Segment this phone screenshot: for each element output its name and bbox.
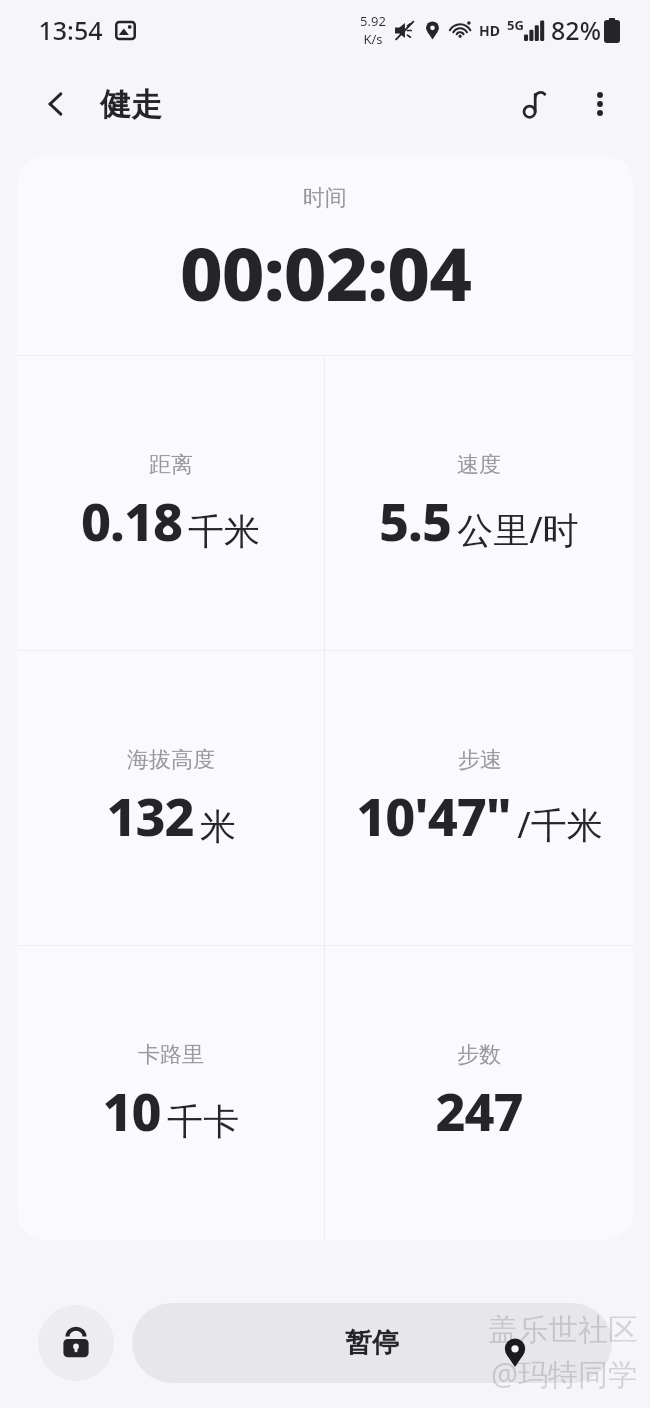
staticText: /千米 bbox=[517, 800, 603, 849]
staticText: 0.18 bbox=[81, 485, 182, 556]
button[interactable]: 速度 bbox=[325, 356, 633, 650]
button[interactable]: More options bbox=[572, 76, 628, 132]
button[interactable]: 暂停 bbox=[132, 1303, 612, 1383]
staticText: 卡路里 bbox=[138, 1041, 204, 1069]
staticText: 盖乐世社区 bbox=[488, 1311, 638, 1349]
staticText: 10 bbox=[102, 1075, 161, 1146]
button[interactable]: Music bbox=[508, 76, 564, 132]
staticText: 速度 bbox=[457, 451, 501, 479]
button[interactable]: 步速 bbox=[325, 651, 633, 945]
button[interactable]: 卡路里 bbox=[17, 946, 324, 1240]
staticText: 健走 bbox=[100, 85, 162, 124]
staticText: 5.5 bbox=[379, 485, 451, 556]
staticText: 10'47" bbox=[356, 780, 511, 851]
staticText: 时间 bbox=[303, 184, 347, 212]
staticText: 千米 bbox=[188, 509, 260, 554]
staticText: 247 bbox=[435, 1075, 523, 1146]
button[interactable]: 海拔高度 bbox=[17, 651, 324, 945]
staticText: 82% bbox=[551, 13, 601, 47]
staticText: 5G bbox=[507, 16, 524, 34]
staticText: 公里/时 bbox=[457, 505, 579, 554]
staticText: 暂停 bbox=[345, 1326, 399, 1360]
staticText: 00:02:04 bbox=[180, 222, 471, 323]
button[interactable]: Back bbox=[30, 78, 82, 130]
staticText: HD bbox=[479, 21, 500, 40]
staticText: 步数 bbox=[457, 1041, 501, 1069]
staticText: 海拔高度 bbox=[127, 746, 215, 774]
button[interactable]: 步数 bbox=[325, 946, 633, 1240]
button[interactable]: Lock bbox=[38, 1305, 114, 1381]
staticText: 距离 bbox=[149, 451, 193, 479]
staticText: 13:54 bbox=[38, 13, 103, 47]
staticText: 千卡 bbox=[167, 1099, 239, 1144]
staticText: 步速 bbox=[458, 746, 502, 774]
staticText: K/s bbox=[363, 30, 383, 48]
staticText: 132 bbox=[106, 780, 194, 851]
button[interactable]: 距离 bbox=[17, 356, 324, 650]
staticText: 5.92 bbox=[360, 12, 386, 30]
staticText: @玛特同学 bbox=[491, 1353, 638, 1394]
staticText: 米 bbox=[200, 804, 236, 849]
button[interactable]: 时间 bbox=[17, 156, 633, 355]
